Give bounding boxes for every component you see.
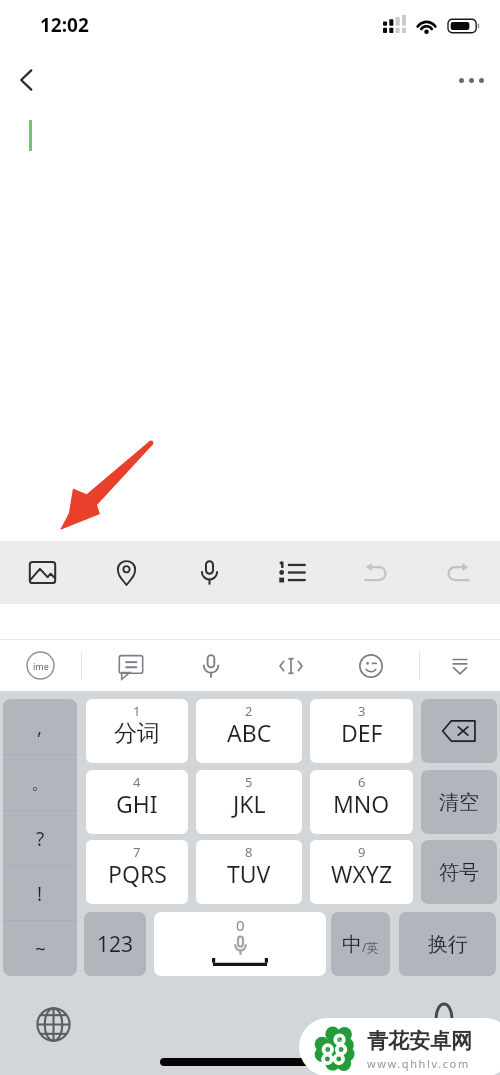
button[interactable]: Insert location	[84, 541, 168, 604]
button[interactable]: 符号	[421, 840, 497, 904]
staticText: TUV	[227, 858, 271, 889]
staticText: 中	[342, 932, 362, 957]
button[interactable]: Emoji	[331, 640, 411, 691]
button[interactable]: 。	[3, 755, 77, 811]
staticText: GHI	[116, 788, 158, 819]
button[interactable]: Delete	[421, 699, 497, 763]
staticText: 0	[236, 915, 245, 935]
staticText: www.qhhlv.com	[367, 1056, 470, 1071]
staticText: 符号	[439, 860, 479, 885]
staticText: 12:02	[40, 12, 89, 38]
staticText: ~	[35, 936, 46, 962]
staticText: ?	[36, 826, 45, 852]
button[interactable]: ~	[3, 921, 77, 976]
staticText: 123	[97, 930, 134, 959]
button[interactable]: Insert image	[0, 541, 84, 604]
button[interactable]: 7	[86, 840, 188, 904]
staticText: 8	[245, 843, 253, 861]
staticText: 青花安卓网	[367, 1028, 472, 1054]
button[interactable]: Undo	[334, 541, 417, 604]
staticText: PQRS	[108, 858, 167, 889]
staticText: 清空	[439, 790, 479, 815]
button[interactable]: Redo	[417, 541, 500, 604]
button[interactable]: 9	[310, 840, 413, 904]
button[interactable]: ,	[3, 699, 77, 755]
staticText: DEF	[341, 717, 383, 748]
button[interactable]: 2	[196, 699, 302, 763]
staticText: MNO	[333, 788, 390, 819]
staticText: 6	[358, 773, 366, 791]
button[interactable]: 中	[331, 912, 390, 976]
button[interactable]: Switch language	[36, 1007, 71, 1042]
button[interactable]: 5	[196, 770, 302, 834]
staticText: 分词	[114, 719, 160, 748]
staticText: ABC	[227, 717, 272, 748]
button[interactable]: Space	[154, 912, 326, 976]
staticText: ime	[33, 660, 49, 672]
button[interactable]: !	[3, 866, 77, 921]
staticText: WXYZ	[331, 858, 393, 889]
staticText: 换行	[428, 932, 468, 957]
button[interactable]: 3	[310, 699, 413, 763]
button[interactable]: 123	[84, 912, 146, 976]
button[interactable]: Cursor control	[251, 640, 331, 691]
staticText: 。	[31, 771, 50, 795]
button[interactable]: Back	[4, 58, 48, 102]
button[interactable]: 1	[86, 699, 188, 763]
button[interactable]: Voice input	[171, 640, 251, 691]
button[interactable]: Hide keyboard	[420, 640, 500, 691]
staticText: 2	[245, 702, 253, 720]
staticText: /英	[362, 939, 379, 955]
staticText: 4	[133, 773, 141, 791]
button[interactable]: 换行	[399, 912, 496, 976]
button[interactable]: 8	[196, 840, 302, 904]
button[interactable]: ?	[3, 811, 77, 866]
button[interactable]: More options	[449, 58, 493, 102]
button[interactable]: Input method settings	[0, 640, 81, 691]
button[interactable]: 6	[310, 770, 413, 834]
button[interactable]: Clipboard	[91, 640, 171, 691]
staticText: JKL	[233, 788, 266, 819]
staticText: 9	[358, 843, 366, 861]
staticText: 3	[358, 702, 366, 720]
button[interactable]: 清空	[421, 770, 497, 834]
staticText: 1	[133, 702, 141, 720]
button[interactable]: Voice input	[168, 541, 251, 604]
staticText: ,	[37, 714, 43, 740]
staticText: 7	[133, 843, 141, 861]
button[interactable]: 4	[86, 770, 188, 834]
staticText: !	[37, 881, 43, 907]
button[interactable]: Checklist	[251, 541, 334, 604]
staticText: 5	[245, 773, 253, 791]
